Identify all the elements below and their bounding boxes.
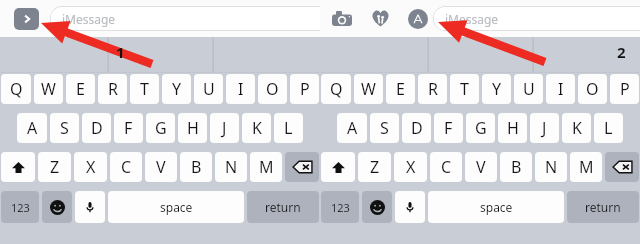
button[interactable]: C — [430, 152, 462, 182]
button[interactable]: Emoji — [362, 191, 392, 223]
staticText: N — [225, 156, 238, 178]
staticText: Q — [330, 78, 343, 100]
button[interactable]: X — [394, 152, 427, 182]
button[interactable]: Digital Touch — [367, 7, 393, 30]
staticText: C — [441, 156, 452, 178]
button[interactable]: Y — [162, 74, 191, 104]
button[interactable]: Show app drawer — [14, 8, 39, 30]
button[interactable]: Dictation — [395, 191, 425, 223]
staticText: space — [160, 199, 193, 215]
button[interactable]: Dictation — [338, 10, 356, 28]
staticText: A — [347, 117, 358, 139]
button[interactable]: S — [370, 113, 399, 143]
button[interactable]: space — [428, 191, 564, 223]
button[interactable]: A — [17, 113, 47, 143]
staticText: 1 — [116, 42, 125, 62]
button[interactable]: I — [226, 74, 255, 104]
button[interactable]: X — [74, 152, 107, 182]
button[interactable]: V — [465, 152, 497, 182]
button[interactable]: Camera — [329, 7, 355, 30]
button[interactable]: N — [535, 152, 567, 182]
button[interactable]: return — [567, 191, 639, 223]
button[interactable]: G — [466, 113, 495, 143]
staticText: R — [428, 78, 438, 100]
button[interactable]: R — [98, 74, 127, 104]
staticText: B — [511, 156, 522, 178]
button[interactable]: E — [386, 74, 415, 104]
staticText: U — [523, 78, 535, 100]
button[interactable]: Q — [1, 74, 31, 104]
button[interactable]: iMessage — [433, 6, 640, 31]
button[interactable]: W — [34, 74, 63, 104]
button[interactable]: J — [210, 113, 239, 143]
button[interactable]: T — [130, 74, 159, 104]
button[interactable]: Shift — [1, 152, 35, 182]
button[interactable]: U — [194, 74, 223, 104]
button[interactable]: M — [250, 152, 282, 182]
button[interactable]: Backspace — [285, 152, 319, 182]
button[interactable]: L — [274, 113, 303, 143]
staticText: O — [586, 78, 599, 100]
button[interactable]: O — [258, 74, 287, 104]
button[interactable]: T — [450, 74, 479, 104]
staticText: Y — [492, 78, 502, 100]
button[interactable]: Y — [482, 74, 511, 104]
button[interactable]: L — [594, 113, 623, 143]
staticText: Q — [10, 78, 23, 100]
button[interactable]: Dictation — [75, 191, 105, 223]
button[interactable]: J — [530, 113, 559, 143]
staticText: M — [259, 156, 274, 178]
staticText: C — [121, 156, 132, 178]
button[interactable]: B — [180, 152, 212, 182]
staticText: 123 — [11, 200, 30, 215]
staticText: A — [27, 117, 38, 139]
button[interactable]: K — [562, 113, 591, 143]
button[interactable]: D — [82, 113, 111, 143]
button[interactable]: I — [546, 74, 575, 104]
button[interactable]: P — [290, 74, 319, 104]
button[interactable]: F — [114, 113, 143, 143]
button[interactable]: M — [570, 152, 602, 182]
button[interactable]: D — [402, 113, 431, 143]
staticText: N — [545, 156, 558, 178]
button[interactable]: A — [337, 113, 367, 143]
staticText: G — [475, 117, 487, 139]
button[interactable]: Shift — [321, 152, 355, 182]
button[interactable]: H — [498, 113, 527, 143]
button[interactable]: G — [146, 113, 175, 143]
button[interactable]: O — [578, 74, 607, 104]
button[interactable]: N — [215, 152, 247, 182]
staticText: Z — [50, 156, 60, 178]
button[interactable]: Q — [321, 74, 351, 104]
staticText: F — [444, 117, 453, 139]
button[interactable]: Backspace — [605, 152, 639, 182]
button[interactable]: return — [247, 191, 319, 223]
staticText: K — [252, 117, 262, 139]
button[interactable]: App Store — [405, 7, 431, 30]
button[interactable]: 123 — [1, 191, 39, 223]
button[interactable]: R — [418, 74, 447, 104]
button[interactable]: C — [110, 152, 142, 182]
staticText: Z — [370, 156, 380, 178]
button[interactable]: P — [610, 74, 639, 104]
button[interactable]: W — [354, 74, 383, 104]
button[interactable]: iMessage — [50, 6, 360, 31]
button[interactable]: F — [434, 113, 463, 143]
button[interactable]: E — [66, 74, 95, 104]
button[interactable]: B — [500, 152, 532, 182]
staticText: D — [91, 117, 103, 139]
button[interactable]: S — [50, 113, 79, 143]
button[interactable]: 123 — [321, 191, 359, 223]
staticText: U — [203, 78, 215, 100]
button[interactable]: Z — [38, 152, 71, 182]
staticText: T — [140, 78, 149, 100]
button[interactable]: V — [145, 152, 177, 182]
button[interactable]: H — [178, 113, 207, 143]
button[interactable]: Z — [358, 152, 391, 182]
button[interactable]: Emoji — [42, 191, 72, 223]
button[interactable]: U — [514, 74, 543, 104]
staticText: S — [60, 117, 69, 139]
staticText: return — [585, 199, 621, 215]
button[interactable]: K — [242, 113, 271, 143]
button[interactable]: space — [108, 191, 244, 223]
